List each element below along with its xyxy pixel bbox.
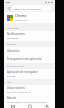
staticText: Permitidas: [7, 37, 19, 40]
button[interactable]: Ubicación: [4, 47, 55, 55]
button[interactable]: Batería: [4, 95, 55, 105]
staticText: Aplicación de navegador: [7, 70, 38, 74]
staticText: Información: [7, 27, 20, 30]
button[interactable]: Aplicación de navegador: [4, 69, 55, 79]
staticText: Notificaciones: [7, 32, 25, 36]
staticText: Datos móviles: [7, 86, 25, 90]
button[interactable]: Cuenta: [38, 105, 55, 108]
button[interactable]: Detalles: [21, 105, 38, 108]
staticText: Permisos: [7, 43, 17, 46]
button[interactable]: Apps: [4, 105, 21, 108]
staticText: Transparencia de aplicación: [7, 57, 42, 61]
staticText: Buscar en Aplicaciones: [14, 7, 41, 10]
staticText: Uso: [7, 81, 11, 84]
button[interactable]: Back: [6, 5, 12, 11]
button[interactable]: Datos móviles: [4, 85, 55, 95]
staticText: No se han usado datos: [7, 91, 31, 94]
button[interactable]: Chrome: [4, 12, 55, 23]
staticText: version 120.0: [15, 19, 28, 22]
staticText: Batería: [7, 96, 17, 100]
staticText: Chrome: [15, 14, 27, 18]
button[interactable]: Buscar en Aplicaciones: [12, 5, 52, 11]
staticText: Sin uso desde la última carga completa: [7, 101, 48, 104]
button[interactable]: Transparencia de aplicación: [4, 55, 55, 63]
staticText: Predeterminados: [7, 65, 25, 68]
staticText: Ubicación: [7, 49, 20, 53]
staticText: Chrome: [7, 75, 16, 78]
button[interactable]: Notificaciones: [4, 31, 55, 41]
